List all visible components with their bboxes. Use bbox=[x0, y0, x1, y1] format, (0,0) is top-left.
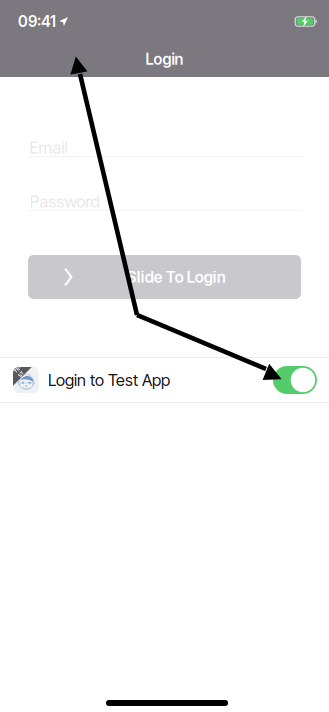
staticText: Login bbox=[145, 50, 183, 69]
button[interactable]: Slide To Login bbox=[28, 255, 301, 299]
staticText: Login to Test App bbox=[48, 370, 170, 390]
staticText: 09:41 bbox=[18, 12, 56, 31]
staticText: TEST bbox=[23, 360, 57, 408]
staticText: Password bbox=[29, 191, 99, 211]
staticText: Slide To Login bbox=[127, 267, 226, 286]
staticText: Email bbox=[29, 137, 67, 157]
button[interactable]: TEST bbox=[0, 358, 329, 402]
